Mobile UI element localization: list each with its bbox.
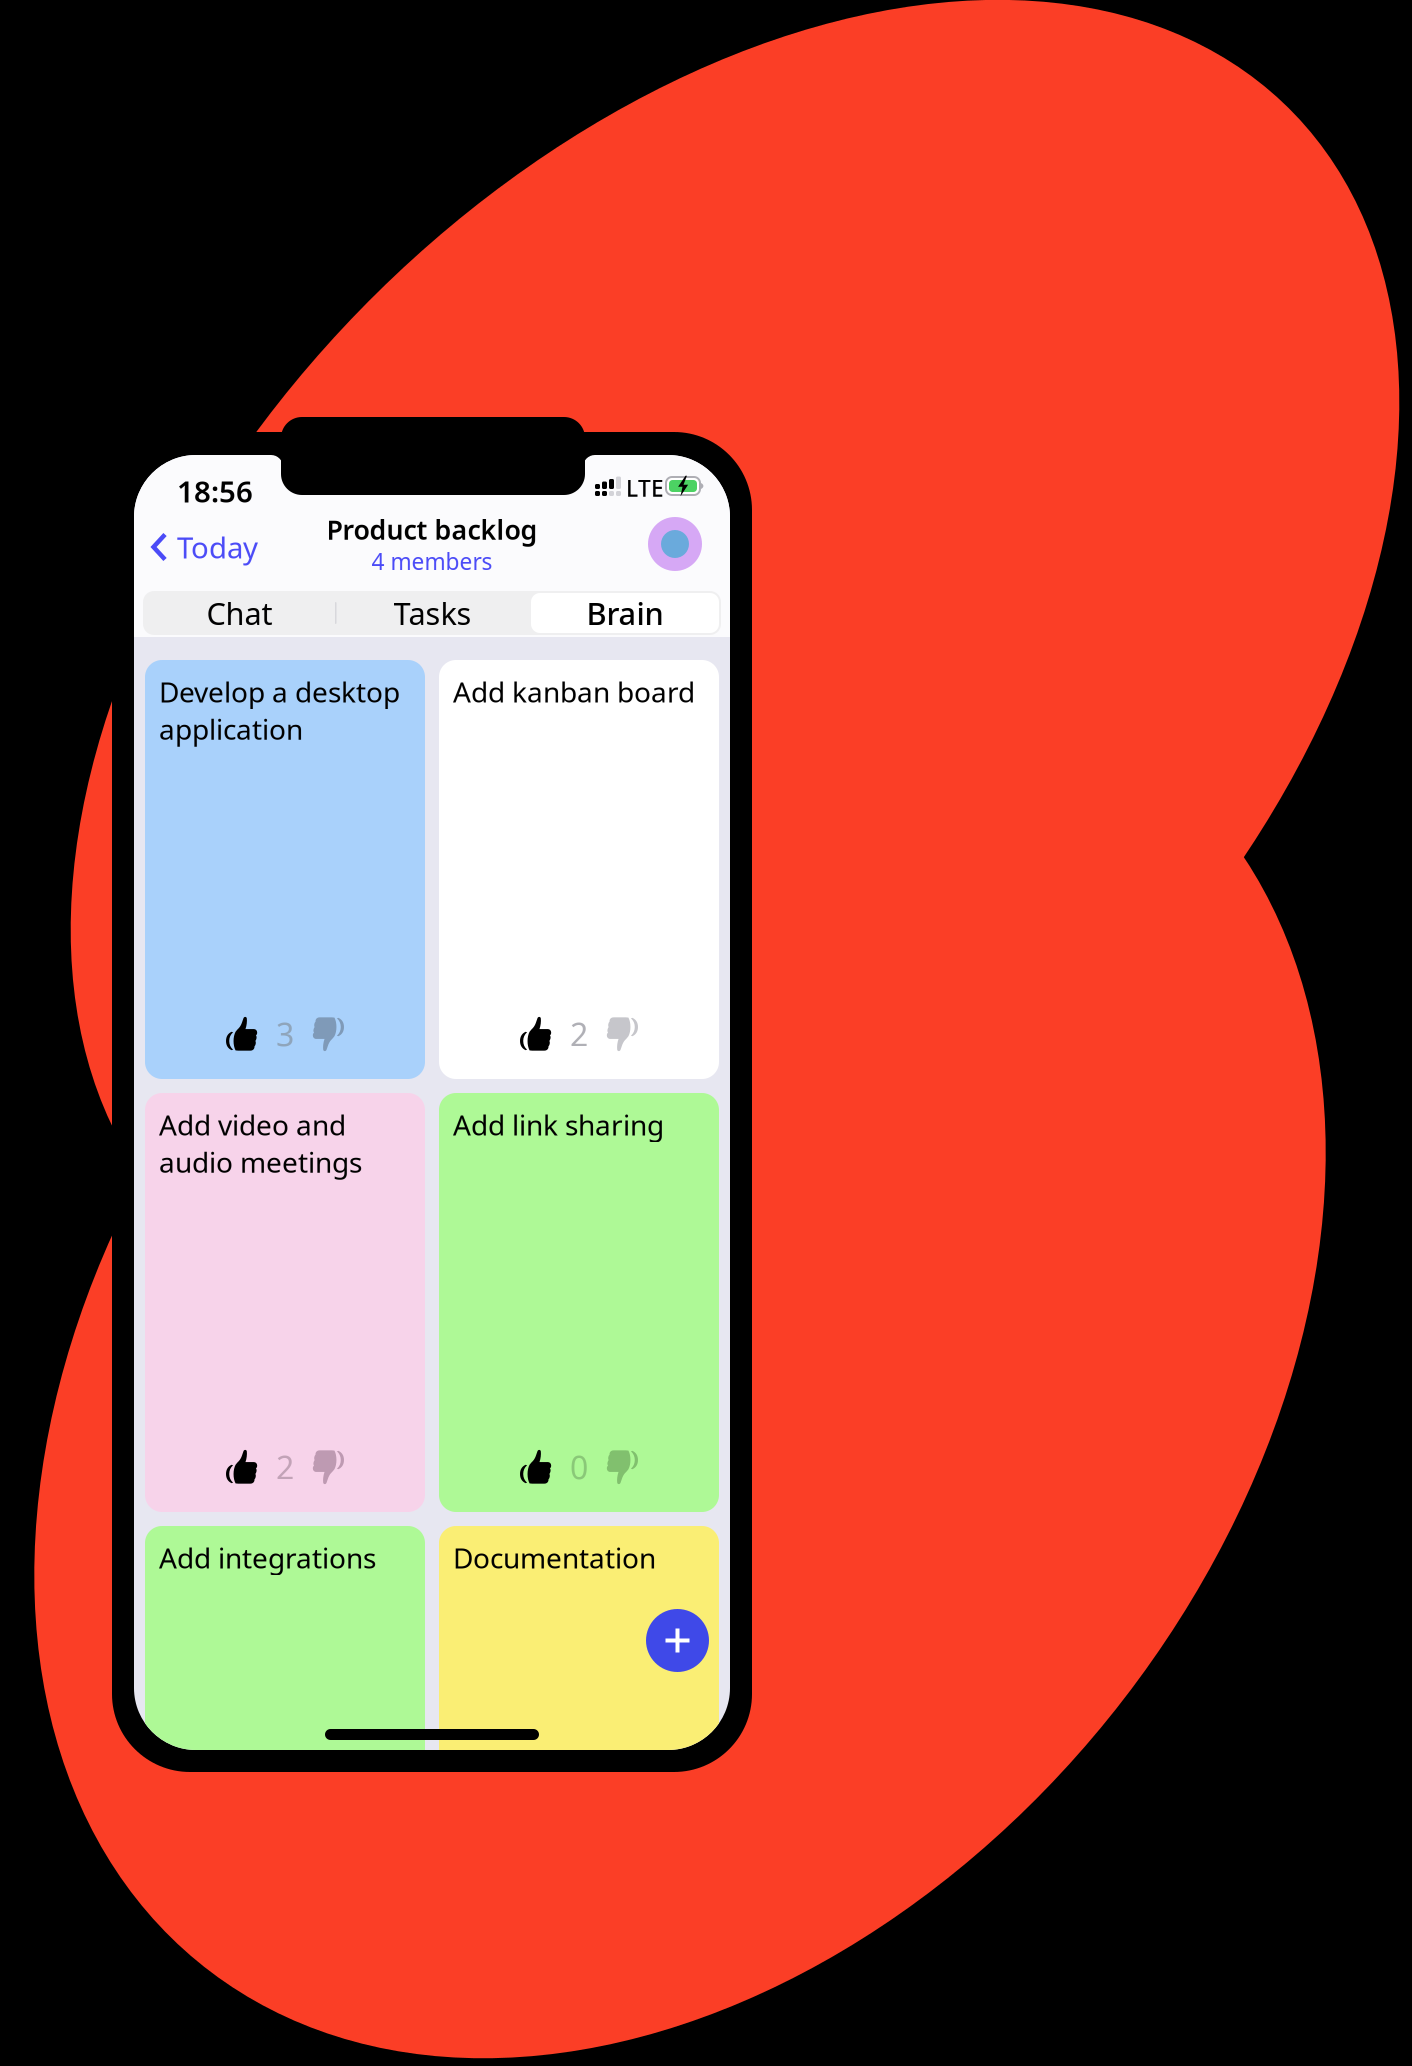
staticText: 18:56 bbox=[177, 471, 253, 510]
staticText: Today bbox=[177, 527, 258, 566]
staticText: Add video and audio meetings bbox=[159, 1106, 362, 1180]
staticText: Add integrations bbox=[159, 1539, 376, 1576]
button[interactable]: Brain bbox=[529, 591, 721, 635]
staticText: Tasks bbox=[393, 593, 471, 633]
staticText: Brain bbox=[586, 593, 663, 633]
staticText: Chat bbox=[206, 593, 272, 633]
staticText: Develop a desktop application bbox=[159, 673, 400, 747]
staticText: Add link sharing bbox=[453, 1106, 664, 1143]
button[interactable]: Documentation bbox=[439, 1526, 719, 1945]
staticText: LTE bbox=[626, 473, 664, 503]
button[interactable]: Chat bbox=[143, 591, 336, 635]
staticText: Add kanban board bbox=[453, 673, 695, 710]
staticText: 4 members bbox=[371, 546, 492, 576]
button[interactable]: Tasks bbox=[336, 591, 529, 635]
button[interactable]: Add video and audio meetings bbox=[145, 1093, 425, 1512]
button[interactable]: Add kanban board bbox=[439, 660, 719, 1079]
staticText: 3 bbox=[276, 1013, 294, 1055]
button[interactable]: Add link sharing bbox=[439, 1093, 719, 1512]
staticText: 2 bbox=[570, 1013, 588, 1055]
staticText: 2 bbox=[276, 1446, 294, 1488]
staticText: 0 bbox=[570, 1446, 588, 1488]
button[interactable]: Members bbox=[640, 509, 710, 579]
button[interactable]: Add integrations bbox=[145, 1526, 425, 1945]
button[interactable]: Develop a desktop application bbox=[145, 660, 425, 1079]
button[interactable]: New idea bbox=[646, 1609, 709, 1672]
staticText: Product backlog bbox=[326, 512, 537, 547]
staticText: Documentation bbox=[453, 1539, 656, 1576]
button[interactable]: Today bbox=[134, 519, 272, 575]
